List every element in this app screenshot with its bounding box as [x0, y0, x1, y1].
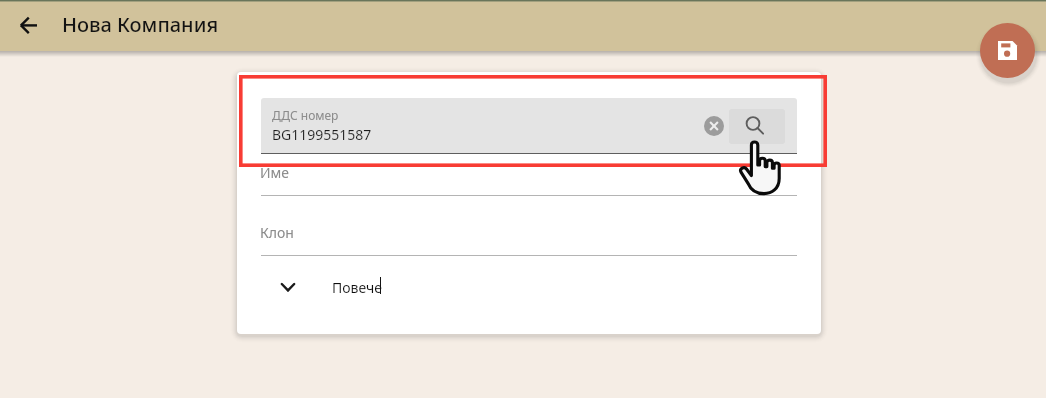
staticText: Клон [260, 223, 294, 242]
button[interactable]: Save [980, 23, 1035, 78]
staticText: Име [260, 163, 290, 182]
button[interactable]: Back [14, 8, 48, 42]
staticText: Нова Компания [62, 11, 219, 38]
button[interactable]: Search [729, 109, 785, 144]
staticText: ДДС номер [272, 107, 339, 123]
staticText: BG1199551587 [272, 125, 372, 144]
button[interactable]: Повече [261, 266, 797, 308]
button[interactable]: Clear text [702, 114, 726, 138]
staticText: Повече [332, 278, 383, 297]
